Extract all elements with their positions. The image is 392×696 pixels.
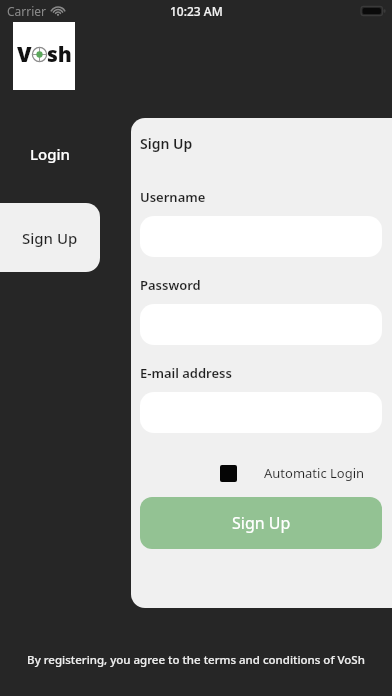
staticText: Carrier [7, 3, 47, 19]
staticText: Login [30, 144, 70, 164]
button[interactable]: Sign Up [140, 497, 382, 549]
staticText: Sign Up [22, 228, 78, 248]
staticText: By registering, you agree to the terms a… [27, 652, 365, 668]
staticText: Sign Up [140, 134, 193, 153]
button[interactable]: Automatic Login [140, 464, 382, 482]
staticText: Username [140, 188, 206, 206]
button[interactable]: Sign Up [0, 203, 100, 272]
staticText: 10:23 AM [170, 3, 223, 19]
button[interactable]: VoSh logo [13, 22, 75, 90]
staticText: sh [47, 40, 72, 69]
button[interactable]: Login [0, 128, 100, 180]
staticText: E-mail address [140, 364, 232, 382]
staticText: Automatic Login [264, 464, 365, 482]
staticText: Password [140, 276, 201, 294]
staticText: V [17, 40, 32, 69]
staticText: Sign Up [232, 512, 291, 534]
